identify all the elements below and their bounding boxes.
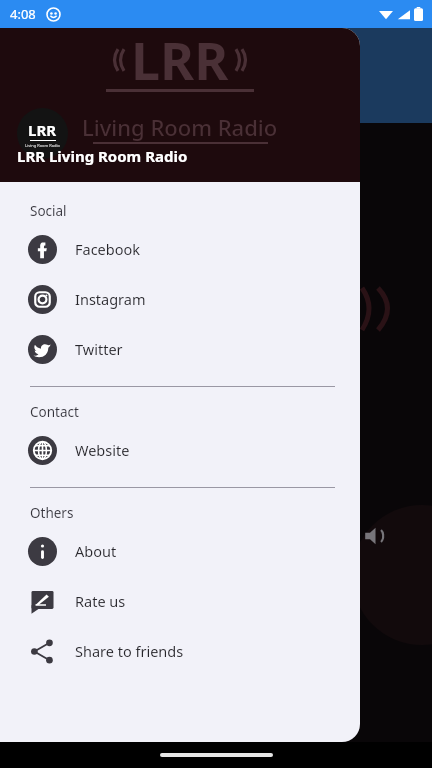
staticText: Rate us — [75, 591, 126, 611]
staticText: About — [75, 541, 117, 561]
staticText: Website — [75, 440, 130, 460]
button[interactable]: Share to friends — [0, 626, 360, 676]
button[interactable]: Instagram — [0, 274, 360, 324]
button[interactable]: Facebook — [0, 224, 360, 274]
button[interactable]: Twitter — [0, 324, 360, 374]
staticText: LRR — [28, 120, 57, 140]
staticText: Facebook — [75, 239, 141, 259]
staticText: Living Room Radio — [82, 112, 278, 142]
button[interactable]: Volume — [364, 524, 388, 548]
staticText: LRR Living Room Radio — [17, 146, 188, 166]
staticText: Twitter — [75, 339, 123, 359]
staticText: LRR — [131, 28, 229, 95]
staticText: Living Room Radio — [25, 143, 60, 148]
staticText: 4:08 — [10, 5, 36, 23]
button[interactable]: Rate us — [0, 576, 360, 626]
staticText: Contact — [30, 403, 79, 421]
staticText: Others — [30, 504, 74, 522]
button[interactable]: About — [0, 526, 360, 576]
staticText: Share to friends — [75, 641, 184, 661]
staticText: Social — [30, 202, 67, 220]
staticText: Instagram — [75, 289, 146, 309]
button[interactable]: Website — [0, 425, 360, 475]
